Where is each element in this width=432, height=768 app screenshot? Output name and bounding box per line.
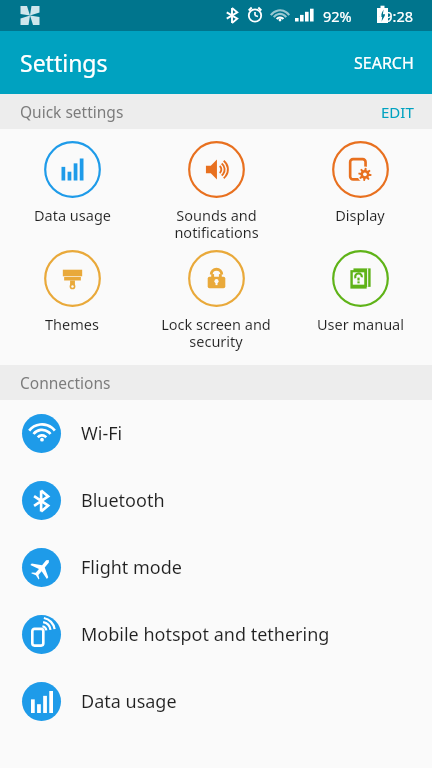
staticText: Data usage (81, 689, 177, 714)
staticText: Wi-Fi (81, 421, 123, 446)
button[interactable]: Lock screen and security (144, 250, 288, 351)
staticText: Connections (20, 372, 111, 393)
button[interactable]: Data usage (0, 141, 144, 225)
staticText: Themes (45, 314, 99, 334)
button[interactable]: Wi-Fi (0, 400, 432, 467)
staticText: Quick settings (20, 101, 124, 122)
staticText: Lock screen and security (161, 314, 271, 351)
button[interactable]: Data usage (0, 668, 432, 735)
staticText: Bluetooth (81, 488, 165, 513)
staticText: Data usage (34, 205, 111, 225)
button[interactable]: User manual (288, 250, 432, 334)
staticText: Mobile hotspot and tethering (81, 622, 330, 647)
staticText: 92% (323, 6, 352, 26)
button[interactable]: SEARCH (336, 36, 432, 90)
staticText: Sounds and notifications (174, 205, 259, 242)
button[interactable]: Display (288, 141, 432, 225)
staticText: User manual (317, 314, 404, 334)
button[interactable]: Bluetooth (0, 467, 432, 534)
button[interactable]: EDIT (363, 94, 432, 129)
staticText: Settings (20, 47, 108, 78)
staticText: 19:28 (376, 6, 414, 26)
button[interactable]: Sounds and notifications (144, 141, 288, 242)
button[interactable]: Mobile hotspot and tethering (0, 601, 432, 668)
button[interactable]: Themes (0, 250, 144, 334)
staticText: EDIT (381, 102, 414, 121)
staticText: Display (335, 205, 385, 225)
staticText: Flight mode (81, 555, 182, 580)
staticText: SEARCH (354, 52, 414, 74)
button[interactable]: Flight mode (0, 534, 432, 601)
